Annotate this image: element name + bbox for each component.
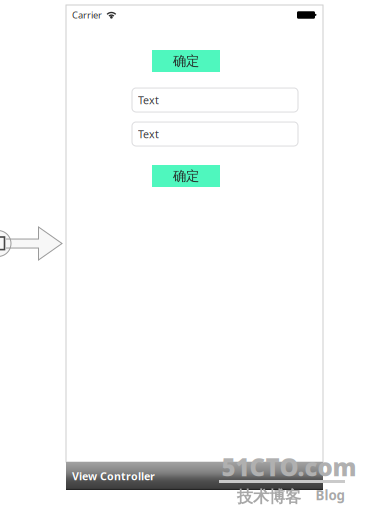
button[interactable]: Text	[132, 122, 298, 146]
staticText: Blog	[315, 486, 344, 504]
staticText: 技术博客	[237, 487, 301, 507]
button[interactable]: Text	[132, 88, 298, 112]
staticText: 确定	[173, 53, 199, 69]
staticText: Carrier	[72, 9, 102, 21]
button[interactable]: 确定	[152, 50, 220, 72]
button[interactable]: 确定	[152, 165, 220, 187]
staticText: 51CTO.com	[221, 451, 356, 483]
staticText: 确定	[173, 168, 199, 184]
staticText: Text	[138, 93, 159, 107]
staticText: View Controller	[72, 469, 155, 483]
staticText: Text	[138, 127, 159, 141]
